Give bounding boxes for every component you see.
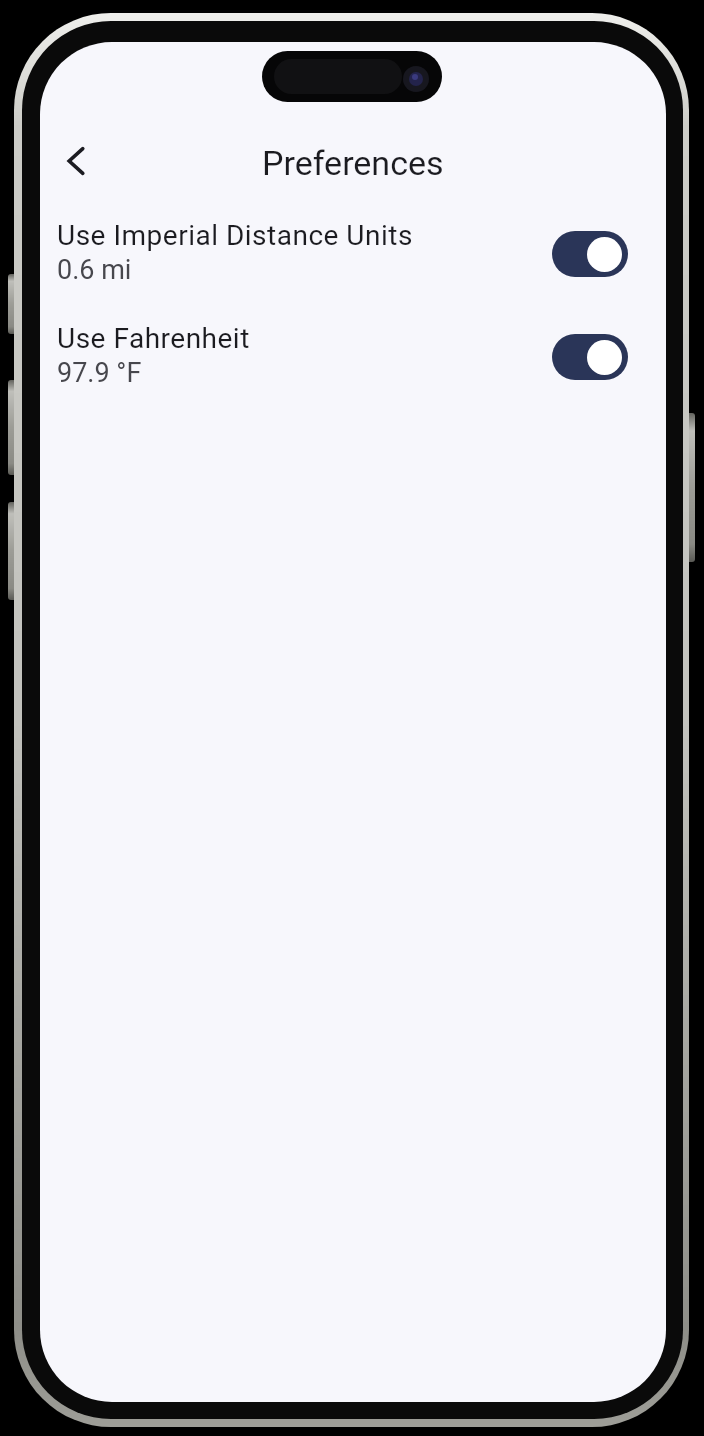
staticText: Preferences [262,143,444,183]
staticText: 0.6 mi [57,254,132,286]
staticText: 97.9 °F [57,357,142,389]
button[interactable] [51,137,99,185]
button[interactable]: Use Imperial Distance Units [40,202,666,305]
button[interactable] [552,231,628,277]
button[interactable]: Use Fahrenheit [40,305,666,408]
button[interactable] [552,334,628,380]
staticText: Use Fahrenheit [57,322,250,355]
staticText: Use Imperial Distance Units [57,219,413,252]
